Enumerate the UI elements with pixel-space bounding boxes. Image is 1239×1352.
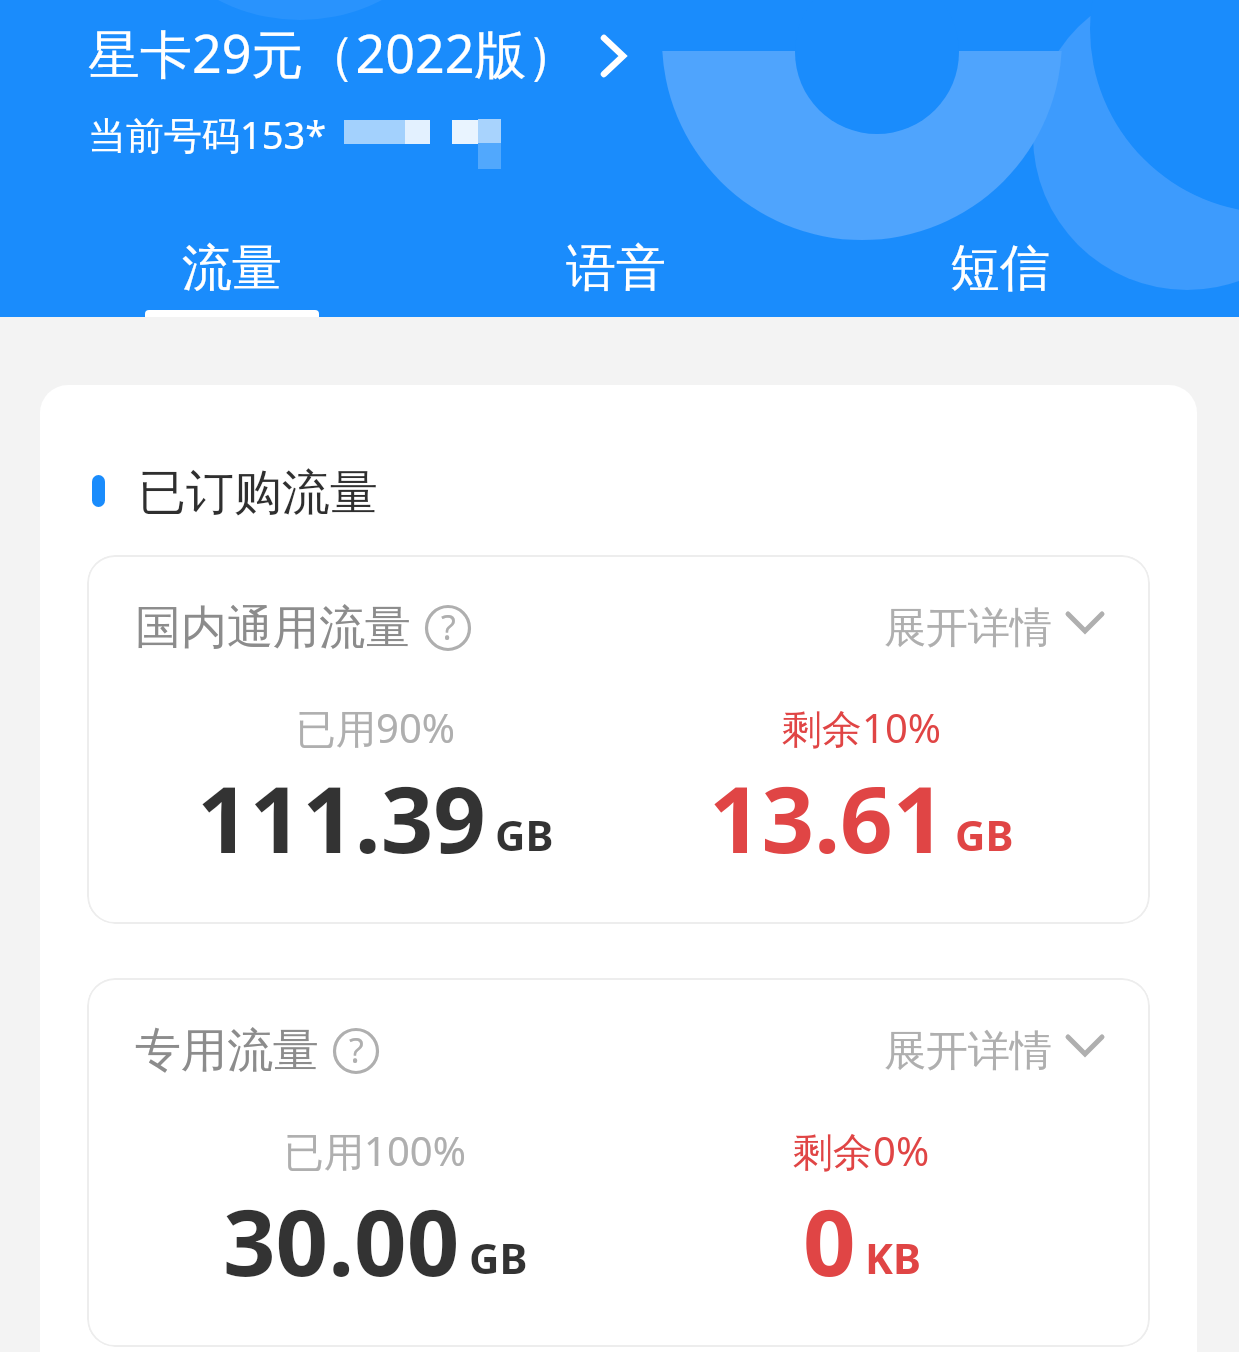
staticText: 流量	[182, 237, 282, 300]
staticText: 0	[803, 1178, 856, 1303]
staticText: 剩余0%	[793, 1123, 930, 1178]
button[interactable]: 语音	[424, 189, 808, 317]
staticText: 展开详情	[884, 602, 1052, 655]
button[interactable]: 流量	[39, 189, 424, 317]
staticText: KB	[865, 1229, 921, 1286]
staticText: ?	[349, 1027, 364, 1073]
staticText: ?	[441, 604, 456, 650]
staticText: 13.61	[709, 755, 946, 880]
staticText: GB	[469, 1229, 528, 1286]
staticText: 已用90%	[296, 700, 455, 755]
staticText: 短信	[950, 237, 1050, 300]
staticText: GB	[955, 806, 1014, 863]
staticText: 111.39	[197, 755, 486, 880]
button[interactable]: 国内通用流量	[87, 555, 1150, 924]
button[interactable]: 专用流量	[87, 978, 1150, 1347]
staticText: 已用100%	[284, 1123, 466, 1178]
staticText: 星卡29元（2022版）	[88, 17, 579, 88]
staticText: GB	[495, 806, 554, 863]
staticText: 当前号码153*	[88, 108, 327, 160]
staticText: 展开详情	[884, 1025, 1052, 1078]
staticText: 语音	[566, 237, 666, 300]
other: 展开详情	[1068, 1028, 1110, 1074]
staticText: 国内通用流量	[135, 599, 411, 657]
staticText: 30.00	[223, 1178, 460, 1303]
button[interactable]: 短信	[808, 189, 1192, 317]
other: 套餐详情	[601, 31, 629, 75]
other: 展开详情	[1068, 605, 1110, 651]
staticText: 专用流量	[135, 1022, 319, 1080]
staticText: 剩余10%	[782, 700, 941, 755]
staticText: 已订购流量	[138, 463, 378, 523]
